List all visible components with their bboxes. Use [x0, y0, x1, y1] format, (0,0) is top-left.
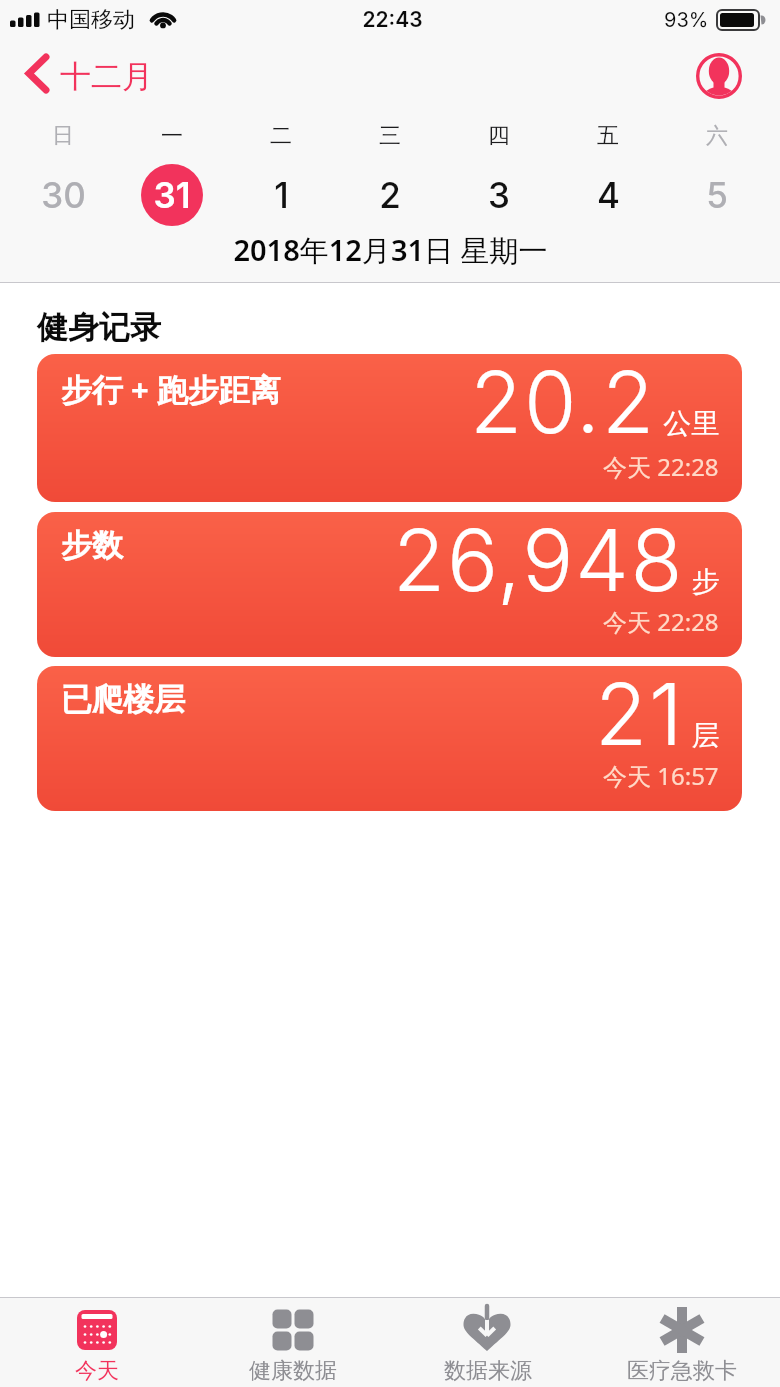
staticText: 一 — [161, 122, 183, 150]
staticText: 今天 22:28 — [603, 605, 719, 638]
staticText: 步数 — [61, 526, 123, 565]
staticText: 步行 + 跑步距离 — [61, 368, 281, 410]
staticText: 3 — [488, 174, 510, 216]
staticText: 六 — [706, 122, 728, 150]
staticText: 21 层 — [595, 666, 720, 766]
staticText: 健康数据 — [249, 1357, 337, 1385]
staticText: 二 — [270, 122, 292, 150]
staticText: 数据来源 — [444, 1357, 532, 1385]
staticText: 2 — [379, 174, 401, 216]
staticText: 20.2 公里 — [470, 354, 720, 454]
staticText: 中国移动 — [47, 6, 135, 34]
staticText: 30 — [41, 174, 86, 216]
staticText: 26,948 步 — [393, 512, 720, 612]
staticText: 2018年12月31日 星期一 — [233, 230, 548, 270]
staticText: 31 — [153, 174, 191, 216]
staticText: 日 — [52, 122, 74, 150]
staticText: 三 — [379, 122, 401, 150]
staticText: 五 — [597, 122, 619, 150]
staticText: 健身记录 — [37, 308, 161, 347]
staticText: 5 — [706, 174, 728, 216]
staticText: 今天 16:57 — [603, 759, 719, 792]
staticText: 今天 — [75, 1357, 119, 1385]
staticText: 93% — [664, 8, 709, 32]
staticText: 今天 22:28 — [603, 450, 719, 483]
staticText: 已爬楼层 — [61, 680, 185, 719]
staticText: 22:43 — [362, 7, 423, 32]
staticText: 十二月 — [60, 57, 153, 96]
staticText: 医疗急救卡 — [627, 1357, 737, 1385]
staticText: 1 — [274, 174, 289, 216]
staticText: 4 — [597, 174, 620, 216]
staticText: 四 — [488, 122, 510, 150]
